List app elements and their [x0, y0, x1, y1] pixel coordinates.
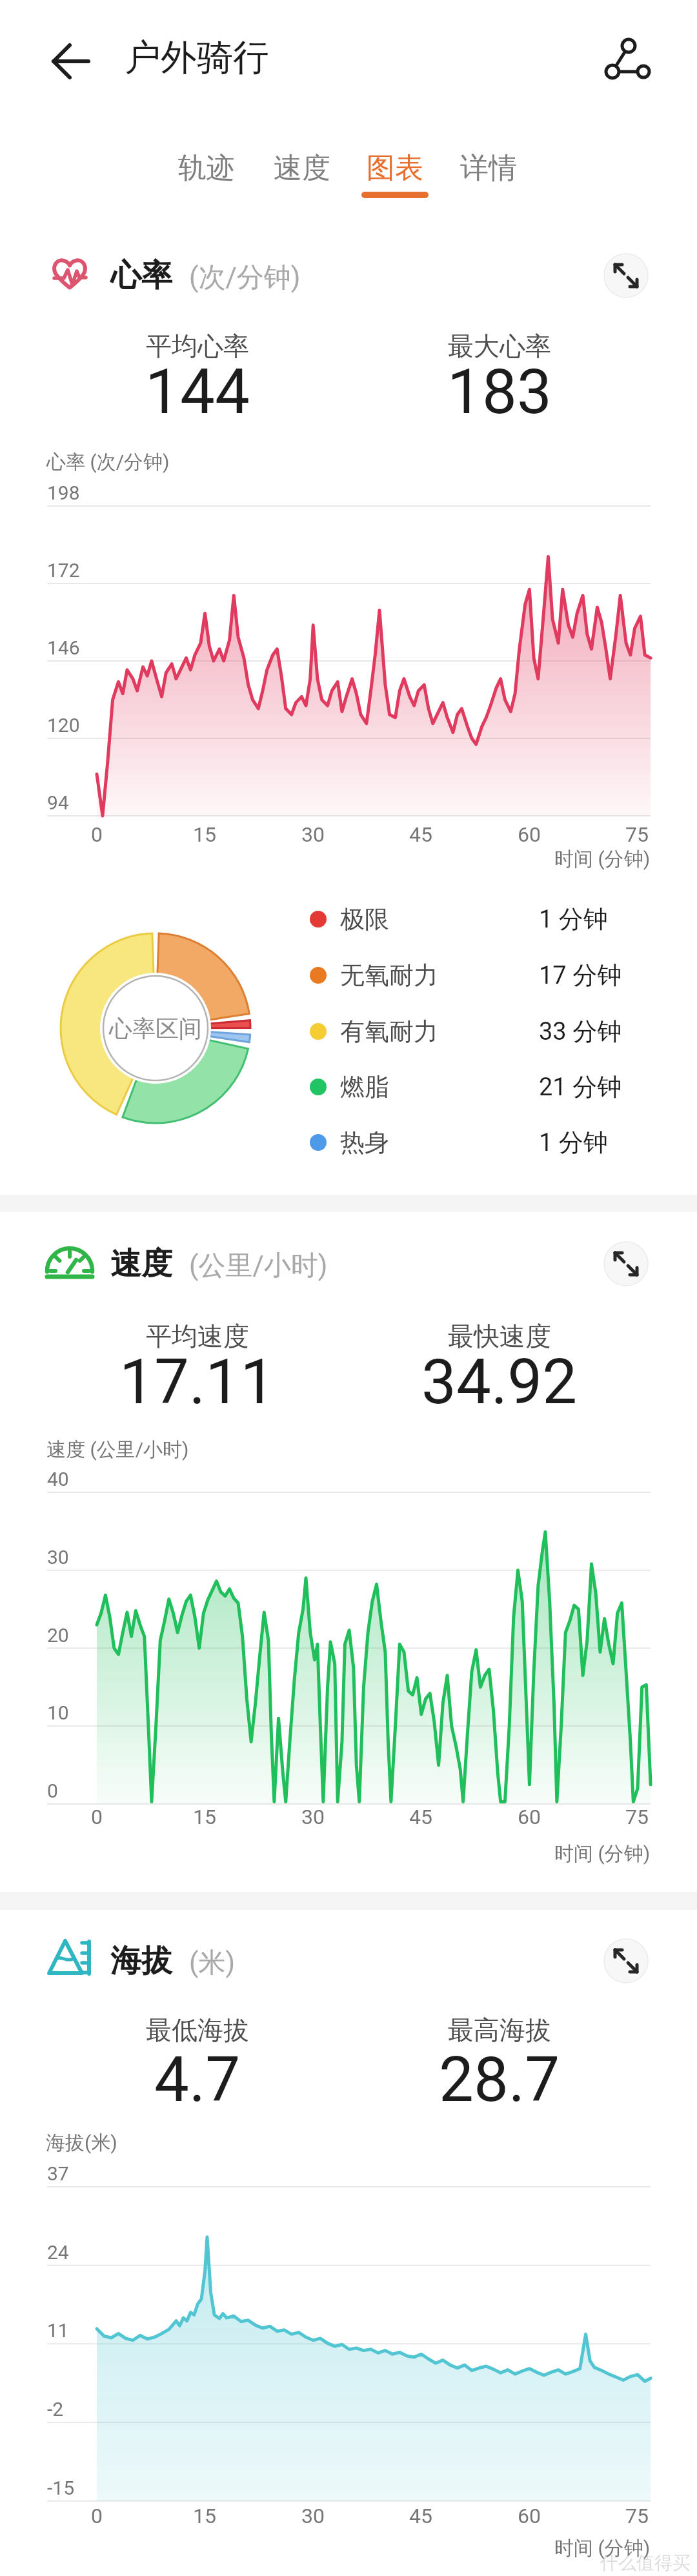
staticText: 144 [145, 356, 250, 429]
staticText: 17 分钟 [539, 960, 622, 991]
staticText: 最大心率 [448, 330, 551, 362]
staticText: 33 分钟 [539, 1016, 622, 1047]
staticText: 户外骑行 [125, 35, 269, 81]
staticText: 45 [409, 1805, 432, 1829]
staticText: 时间 (分钟) [554, 847, 651, 871]
staticText: 图表 [367, 150, 423, 186]
staticText: 45 [409, 2504, 432, 2528]
staticText: 0 [91, 2504, 103, 2528]
staticText: (米) [189, 1946, 235, 1980]
staticText: 75 [625, 822, 649, 847]
staticText: 4.7 [154, 2044, 241, 2116]
staticText: 平均速度 [146, 1320, 249, 1352]
staticText: (公里/小时) [189, 1249, 328, 1283]
staticText: -2 [47, 2398, 64, 2420]
staticText: 34.92 [421, 1346, 578, 1419]
staticText: 速度 [274, 150, 330, 186]
staticText: 30 [301, 1805, 325, 1829]
button[interactable] [441, 139, 536, 197]
button[interactable] [348, 139, 442, 197]
staticText: 1 分钟 [539, 904, 608, 935]
staticText: 20 [47, 1624, 69, 1647]
staticText: 平均心率 [146, 330, 249, 362]
staticText: 热身 [340, 1127, 389, 1158]
staticText: 什么值得买 [600, 2551, 691, 2574]
staticText: 15 [193, 2504, 216, 2528]
staticText: 速度 [110, 1244, 172, 1283]
staticText: 10 [47, 1701, 69, 1724]
staticText: 时间 (分钟) [554, 2536, 651, 2561]
staticText: 146 [47, 636, 80, 659]
staticText: 37 [47, 2162, 69, 2185]
staticText: 120 [47, 714, 80, 736]
staticText: 燃脂 [340, 1071, 389, 1102]
staticText: 速度 (公里/小时) [46, 1437, 189, 1462]
staticText: 15 [193, 822, 216, 847]
staticText: 海拔 [110, 1942, 172, 1980]
staticText: 94 [47, 791, 69, 814]
staticText: 45 [409, 822, 432, 847]
staticText: 0 [91, 1805, 103, 1829]
staticText: 60 [518, 822, 541, 847]
staticText: 24 [47, 2241, 69, 2264]
button[interactable] [604, 1939, 648, 1983]
staticText: 心率 (次/分钟) [46, 450, 170, 474]
staticText: 183 [447, 356, 552, 429]
button[interactable] [594, 32, 665, 103]
staticText: 心率区间 [109, 1014, 202, 1043]
staticText: 17.11 [119, 1346, 276, 1419]
staticText: 28.7 [439, 2044, 560, 2116]
staticText: 198 [47, 482, 80, 504]
staticText: 30 [301, 822, 325, 847]
staticText: 30 [301, 2504, 325, 2528]
staticText: 海拔(米) [46, 2131, 117, 2155]
staticText: 轨迹 [178, 150, 235, 186]
button[interactable] [604, 254, 648, 298]
staticText: 40 [47, 1468, 69, 1490]
staticText: 极限 [340, 904, 389, 935]
staticText: 75 [625, 2504, 649, 2528]
staticText: 最高海拔 [448, 2014, 551, 2046]
staticText: -15 [47, 2477, 75, 2499]
staticText: 最快速度 [448, 1320, 551, 1352]
staticText: 1 分钟 [539, 1127, 608, 1158]
staticText: 11 [47, 2319, 69, 2342]
button[interactable] [39, 29, 103, 94]
staticText: 0 [91, 822, 103, 847]
staticText: 详情 [460, 150, 517, 186]
staticText: 最低海拔 [146, 2014, 249, 2046]
staticText: 心率 [110, 256, 172, 295]
staticText: 75 [625, 1805, 649, 1829]
staticText: (次/分钟) [189, 261, 301, 295]
staticText: 172 [47, 559, 80, 582]
staticText: 时间 (分钟) [554, 1841, 651, 1866]
button[interactable] [604, 1242, 648, 1286]
staticText: 60 [518, 1805, 541, 1829]
staticText: 无氧耐力 [340, 960, 438, 991]
button[interactable] [255, 139, 349, 197]
staticText: 0 [47, 1780, 58, 1802]
button[interactable] [159, 139, 254, 197]
staticText: 有氧耐力 [340, 1016, 438, 1047]
staticText: 30 [47, 1546, 69, 1568]
staticText: 21 分钟 [539, 1071, 622, 1102]
staticText: 60 [518, 2504, 541, 2528]
staticText: 15 [193, 1805, 216, 1829]
